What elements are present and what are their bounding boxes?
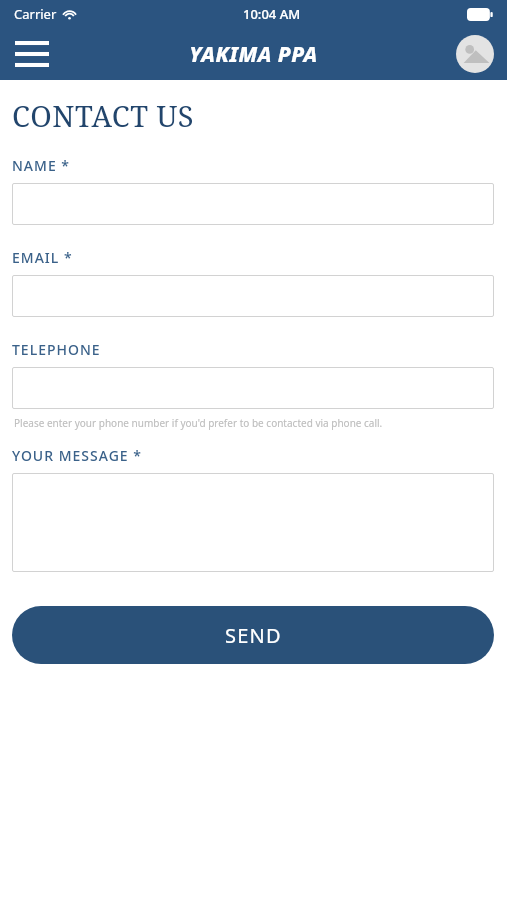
staticText: Please enter your phone number if you'd … bbox=[14, 416, 383, 430]
staticText: NAME * bbox=[12, 156, 70, 175]
staticText: EMAIL * bbox=[12, 248, 73, 267]
staticText: YAKIMA PPA bbox=[189, 40, 318, 69]
button[interactable]: Text input field bbox=[12, 275, 494, 317]
staticText: SEND bbox=[225, 622, 282, 649]
staticText: CONTACT US bbox=[12, 96, 195, 135]
button[interactable]: Text input field bbox=[12, 367, 494, 409]
button[interactable]: Open navigation menu bbox=[8, 30, 56, 78]
staticText: YOUR MESSAGE * bbox=[12, 446, 142, 465]
button[interactable]: Text input field bbox=[12, 473, 494, 572]
staticText: 10:04 AM bbox=[243, 5, 301, 23]
button[interactable]: Account profile bbox=[455, 34, 495, 74]
staticText: TELEPHONE bbox=[12, 340, 101, 359]
staticText: Carrier bbox=[14, 5, 57, 23]
button[interactable]: Text input field bbox=[12, 183, 494, 225]
button[interactable]: SEND bbox=[12, 606, 494, 664]
